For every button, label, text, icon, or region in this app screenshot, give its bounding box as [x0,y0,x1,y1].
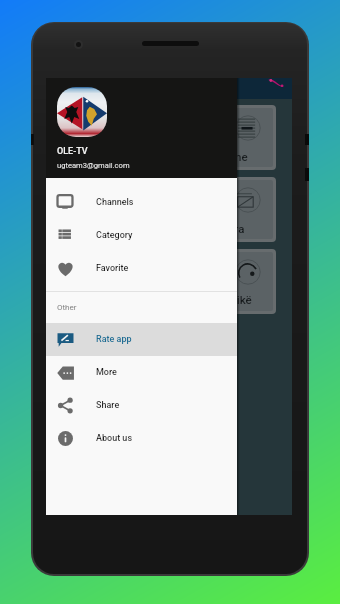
button[interactable]: Category [46,219,237,252]
staticText: More [96,367,117,378]
staticText: About us [96,433,133,444]
staticText: Rate app [96,334,132,345]
button[interactable]: Rate app [46,323,237,356]
button[interactable]: About us [46,422,237,455]
staticText: Favorite [96,263,129,274]
staticText: Channels [96,197,134,208]
button[interactable]: Shkodra [58,177,276,242]
staticText: Other [57,303,77,312]
staticText: Share [96,400,120,411]
staticText: Butrintikë [202,293,252,306]
button[interactable]: Channels [46,186,237,219]
button[interactable]: More [46,356,237,389]
button[interactable]: Share [46,389,237,422]
button[interactable]: Butrintikë [58,249,276,314]
staticText: Shkodra [202,222,245,235]
staticText: Tirane [215,150,248,163]
button[interactable]: Favorite [46,252,237,285]
staticText: ugteam3@gmail.com [57,161,130,170]
staticText: OLE-TV [57,146,88,157]
button[interactable]: Tirane [58,105,276,170]
other: App logo [268,78,284,87]
staticText: Category [96,230,133,241]
